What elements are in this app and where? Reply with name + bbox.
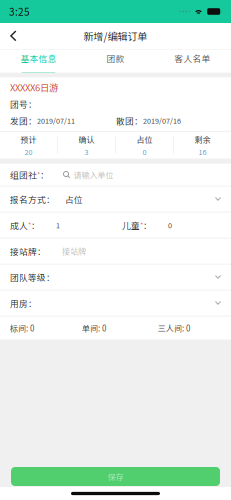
button[interactable]: 组团社 [0, 164, 231, 186]
staticText: 用房 [10, 297, 28, 309]
staticText: 确认 [78, 133, 94, 145]
staticText: 接站牌 [62, 245, 86, 257]
staticText: ： [28, 297, 37, 309]
staticText: 剩余 [194, 133, 210, 145]
staticText: 2019/07/11 [37, 115, 75, 126]
button[interactable]: Back [0, 23, 27, 49]
staticText: 接站牌 [10, 245, 37, 257]
staticText: 儿童 [122, 219, 140, 231]
staticText: 0 [168, 220, 172, 230]
staticText: 1 [56, 220, 60, 230]
staticText: 3:25 [9, 4, 30, 19]
staticText: 单间: 0 [82, 322, 106, 334]
staticText: 团号： [10, 98, 37, 110]
staticText: 报名方式 [10, 193, 46, 205]
staticText: ： [31, 219, 40, 231]
button[interactable]: 团款 [77, 50, 154, 73]
staticText: 团队等级 [10, 271, 46, 283]
button[interactable]: 基本信息 [0, 50, 77, 73]
staticText: * [37, 169, 40, 180]
button[interactable]: 团队等级 [0, 264, 231, 290]
staticText: 2019/07/16 [143, 115, 181, 126]
staticText: 团款 [106, 52, 124, 64]
staticText: 标间: 0 [10, 322, 34, 334]
staticText: * [28, 220, 31, 230]
staticText: 请输入单位 [73, 169, 113, 180]
button[interactable]: 接站牌 [0, 238, 231, 264]
staticText: 基本信息 [20, 52, 56, 64]
staticText: 16 [198, 146, 206, 157]
staticText: 3 [84, 146, 88, 157]
staticText: 成人 [10, 219, 28, 231]
staticText: ： [143, 219, 152, 231]
staticText: 新增/编辑订单 [83, 29, 147, 43]
staticText: 0 [142, 146, 146, 157]
staticText: 三人间: 0 [158, 322, 190, 334]
staticText: 发团： [10, 114, 37, 127]
button[interactable]: 报名方式 [0, 186, 231, 212]
button[interactable]: 用房 [0, 290, 231, 316]
staticText: 保存 [107, 471, 123, 482]
staticText: 20 [25, 146, 33, 157]
staticText: 客人名单 [174, 52, 210, 64]
staticText: 组团社 [10, 168, 37, 181]
staticText: 预计 [21, 133, 37, 145]
staticText: * [140, 220, 143, 230]
staticText: ： [46, 271, 55, 283]
button[interactable]: 客人名单 [154, 50, 231, 73]
staticText: ： [46, 193, 55, 205]
staticText: ： [37, 245, 46, 257]
staticText: ： [40, 168, 49, 181]
staticText: 占位 [65, 193, 83, 205]
staticText: 占位 [136, 133, 152, 145]
staticText: XXXXX6日游 [10, 80, 58, 94]
button[interactable]: 保存 [11, 467, 220, 486]
staticText: 散团： [116, 114, 143, 127]
